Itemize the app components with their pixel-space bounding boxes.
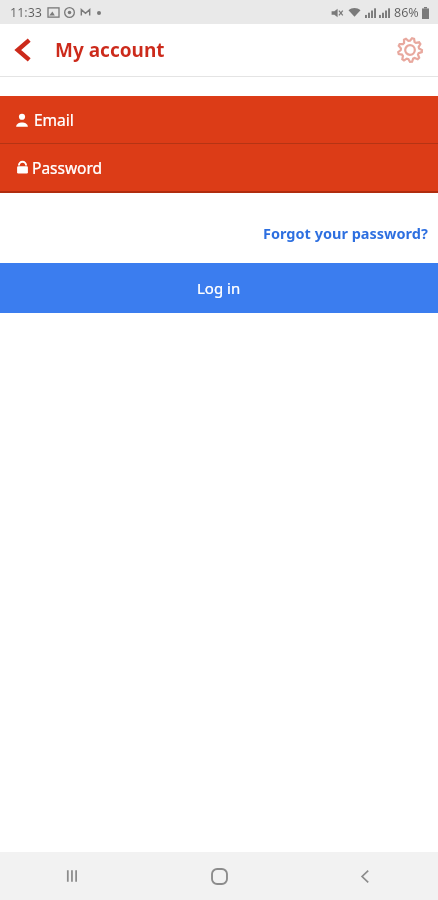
- staticText: Log in: [197, 278, 241, 298]
- staticText: 86%: [394, 4, 419, 21]
- staticText: Password: [32, 157, 103, 178]
- button[interactable]: Email: [0, 96, 438, 143]
- staticText: 11:33: [10, 4, 42, 21]
- staticText: My account: [55, 37, 165, 63]
- staticText: Forgot your password?: [263, 223, 428, 243]
- button[interactable]: Back: [0, 26, 48, 74]
- staticText: Email: [34, 109, 74, 130]
- button[interactable]: Settings: [388, 28, 432, 72]
- button[interactable]: Log in: [0, 263, 438, 313]
- button[interactable]: Password: [0, 144, 438, 191]
- button[interactable]: Forgot your password?: [253, 219, 438, 247]
- button[interactable]: Back: [292, 852, 438, 900]
- button[interactable]: Recent apps: [0, 852, 146, 900]
- button[interactable]: Home: [146, 852, 292, 900]
